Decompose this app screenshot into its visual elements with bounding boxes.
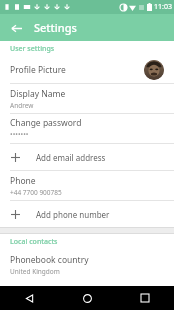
staticText: Add phone number [36,209,110,220]
staticText: Andrew [10,101,34,110]
staticText: United Kingdom [10,267,60,276]
button[interactable]: Change password [0,114,174,143]
staticText: +44 7700 900785 [10,188,62,197]
button[interactable]: Recent apps [116,286,174,310]
staticText: Change password [10,117,82,129]
button[interactable]: Add email address [0,144,174,170]
button[interactable]: Home [58,286,116,310]
staticText: Display Name [10,88,66,100]
staticText: Phonebook country [10,254,89,266]
staticText: Settings [34,20,77,35]
button[interactable]: Display Name [0,84,174,113]
staticText: 11:03 [154,2,172,12]
button[interactable]: Phonebook country [0,250,174,279]
button[interactable]: Profile Picture [0,57,174,83]
staticText: User settings [10,44,55,54]
button[interactable]: Back [6,18,26,38]
button[interactable]: Phone [0,171,174,200]
staticText: Profile Picture [10,64,144,76]
button[interactable]: Back [0,286,58,310]
staticText: Add email address [36,152,106,163]
staticText: Local contacts [10,237,58,247]
staticText: Phone [10,175,36,187]
staticText: ••••••• [10,130,29,140]
button[interactable]: Add phone number [0,201,174,227]
